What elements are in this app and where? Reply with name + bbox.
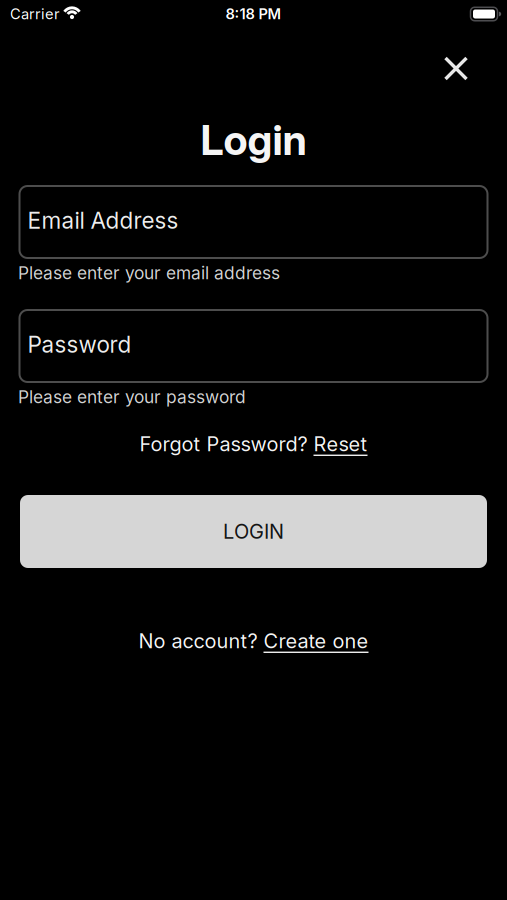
staticText: 8:18 PM [225, 5, 281, 23]
button[interactable]: Email Address [19, 186, 487, 258]
button[interactable]: Forgot Password? Reset [139, 431, 367, 457]
staticText: Email Address [27, 207, 178, 234]
button[interactable] [444, 57, 468, 81]
staticText: LOGIN [223, 520, 284, 543]
staticText: No account? Create one [138, 629, 368, 653]
staticText: Please enter your password [18, 387, 246, 407]
button[interactable]: No account? Create one [138, 628, 368, 654]
staticText: Login [200, 116, 306, 164]
button[interactable]: LOGIN [20, 495, 487, 568]
staticText: Carrier [10, 5, 60, 23]
button[interactable]: Password [19, 310, 487, 382]
staticText: Forgot Password? Reset [139, 432, 367, 456]
staticText: Password [27, 331, 131, 358]
staticText: Please enter your email address [18, 263, 280, 283]
